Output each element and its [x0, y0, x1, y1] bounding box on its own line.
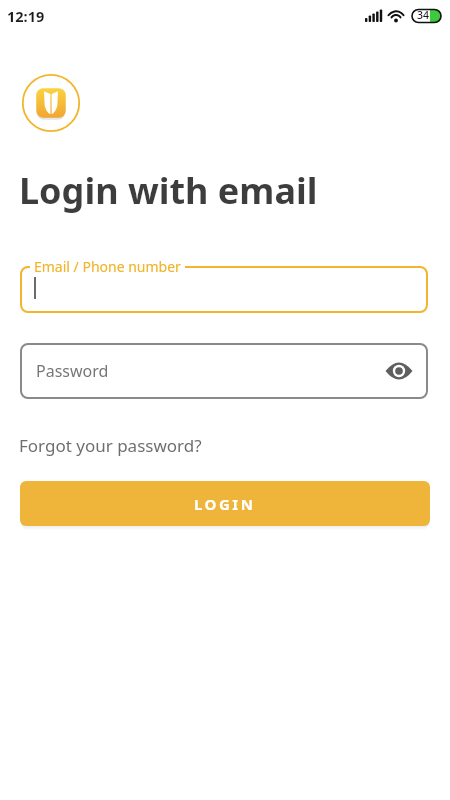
button[interactable]: Password	[20, 343, 428, 399]
button[interactable]: LOGIN	[20, 481, 430, 526]
staticText: 12:19	[7, 6, 45, 26]
staticText: Password	[36, 360, 109, 382]
staticText: LOGIN	[194, 494, 256, 514]
button[interactable]	[386, 358, 412, 384]
button[interactable]	[20, 266, 428, 313]
staticText: 34	[417, 8, 430, 22]
staticText: Login with email	[19, 166, 318, 215]
staticText: Email / Phone number	[34, 257, 181, 276]
button[interactable]: Forgot your password?	[19, 434, 202, 457]
